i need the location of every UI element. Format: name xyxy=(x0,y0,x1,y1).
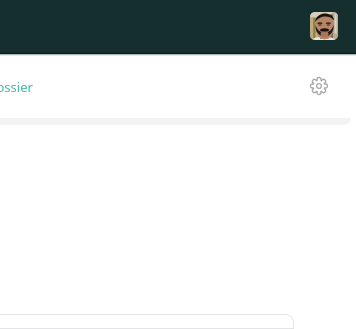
button[interactable] xyxy=(0,314,294,329)
button[interactable]: Account xyxy=(310,12,338,40)
staticText: Dossier xyxy=(0,78,33,96)
button[interactable]: Settings xyxy=(310,77,328,95)
